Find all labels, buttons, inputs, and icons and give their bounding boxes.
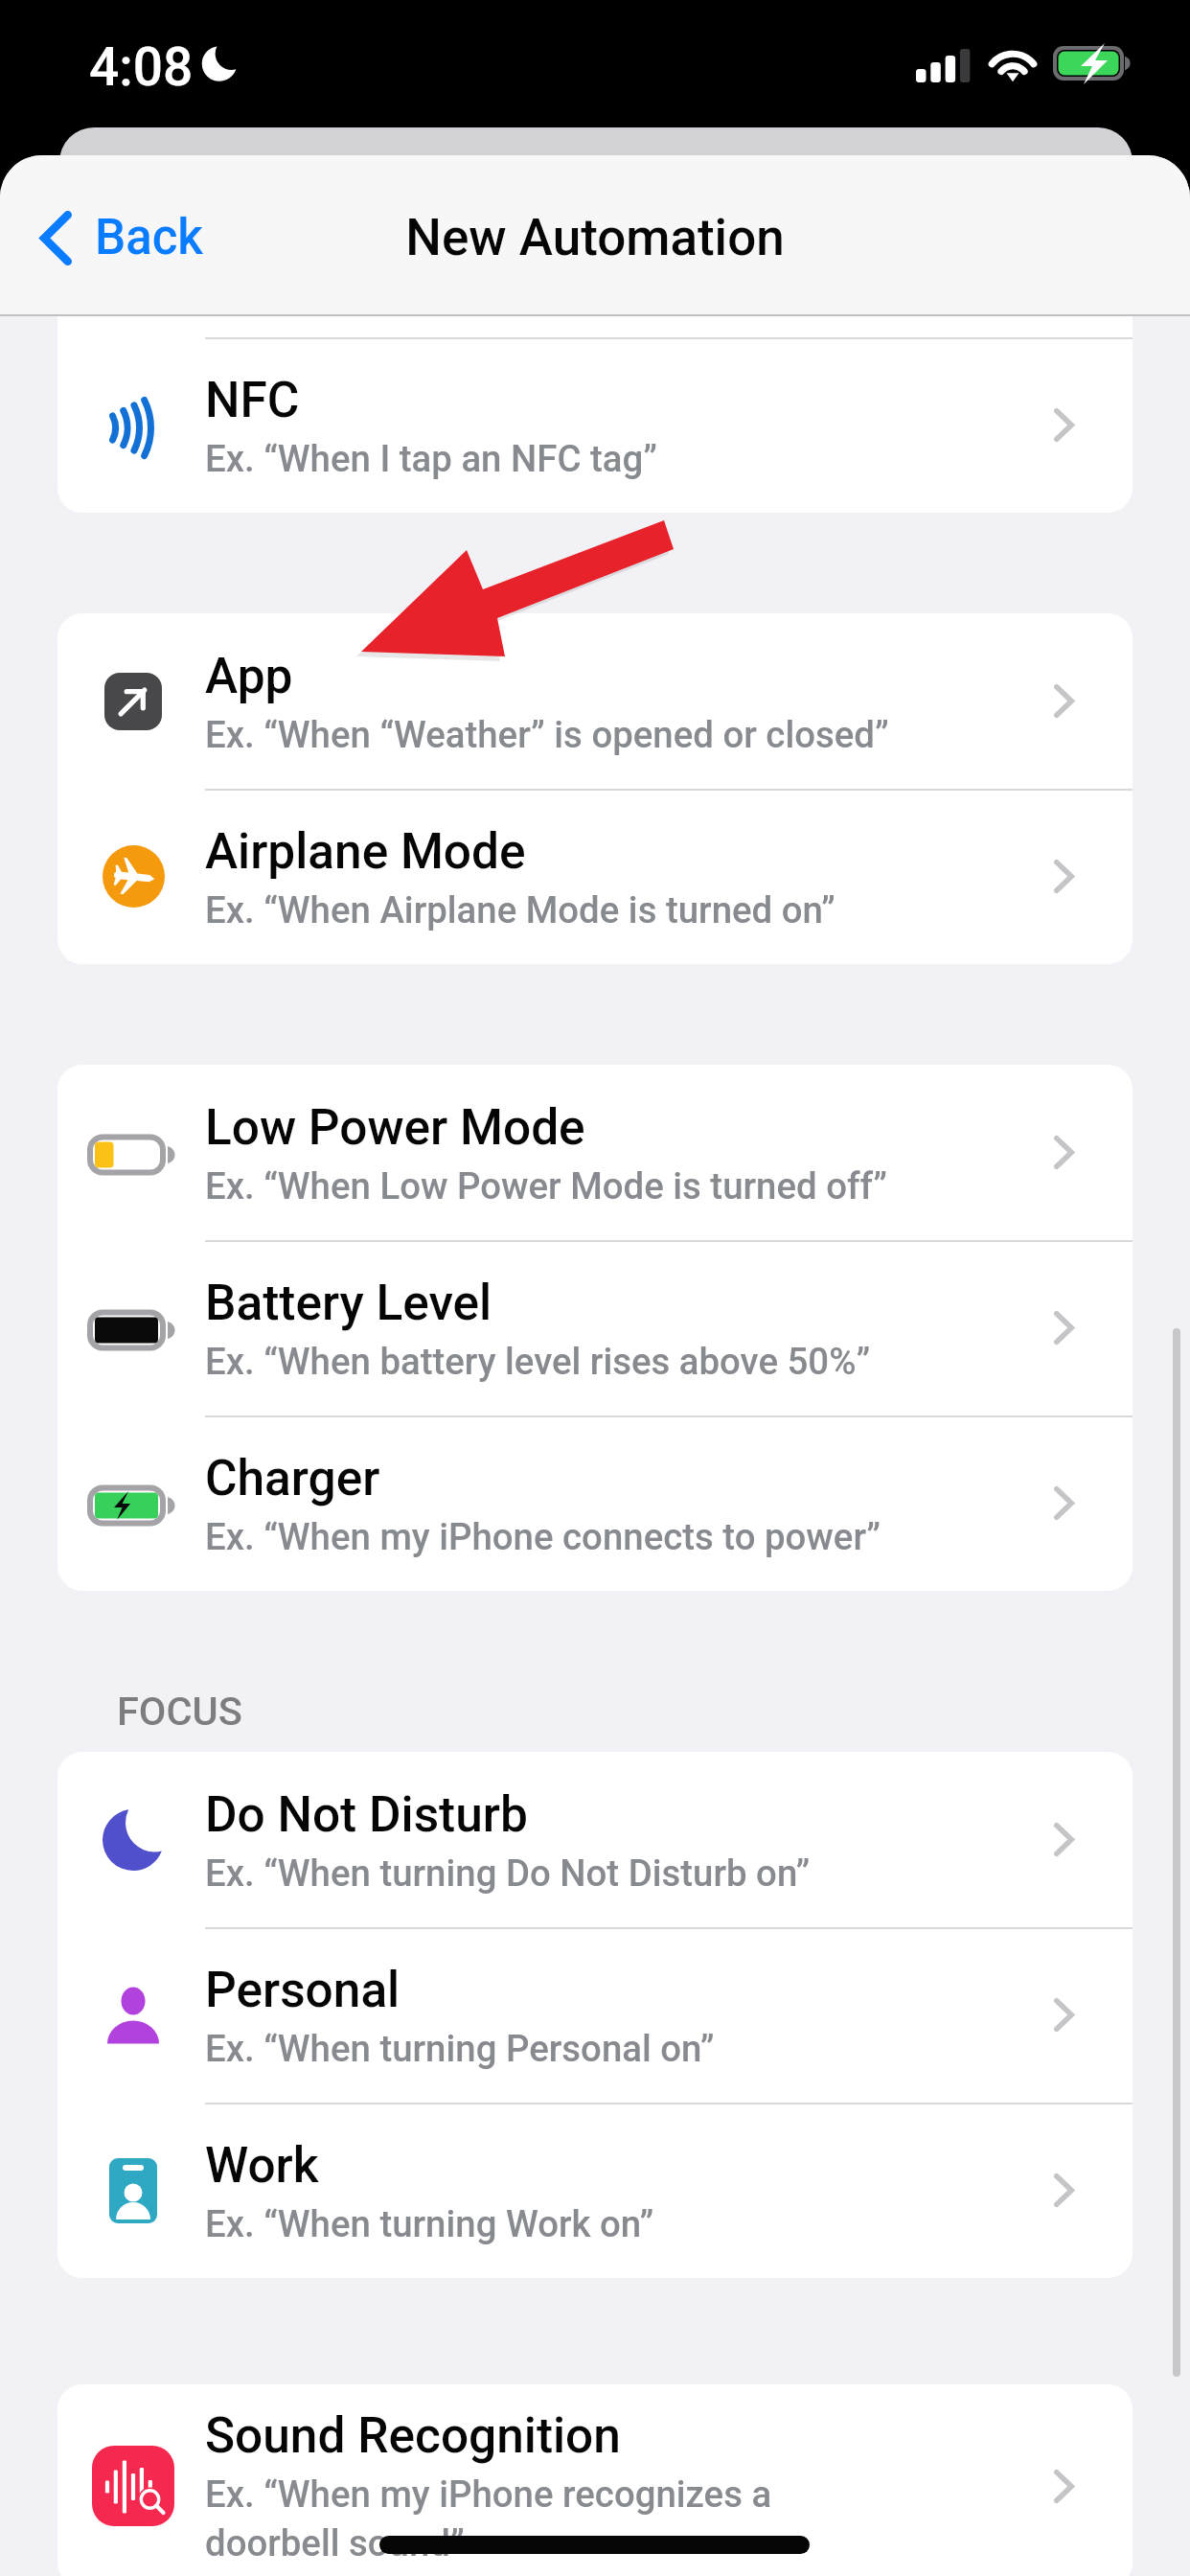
staticText: Back bbox=[95, 209, 203, 266]
staticText: Personal bbox=[205, 1961, 400, 2018]
staticText: Ex. “When my iPhone recognizes a doorbel… bbox=[205, 2472, 772, 2565]
button[interactable]: Sound Recognition bbox=[57, 2384, 1133, 2576]
staticText: Ex. “When turning Personal on” bbox=[205, 2027, 715, 2070]
staticText: Work bbox=[205, 2136, 319, 2194]
staticText: Ex. “When my iPhone connects to power” bbox=[205, 1515, 881, 1558]
button[interactable]: Battery Level bbox=[57, 1240, 1133, 1415]
button[interactable]: Work bbox=[57, 2103, 1133, 2278]
staticText: Ex. “When turning Do Not Disturb on” bbox=[205, 1851, 811, 1895]
staticText: Do Not Disturb bbox=[205, 1785, 528, 1843]
staticText: Ex. “When Low Power Mode is turned off” bbox=[205, 1164, 888, 1207]
button[interactable]: Back bbox=[27, 197, 217, 278]
staticText: Ex. “When Airplane Mode is turned on” bbox=[205, 888, 835, 931]
button[interactable]: App bbox=[57, 613, 1133, 789]
button[interactable]: Low Power Mode bbox=[57, 1065, 1133, 1240]
button[interactable]: Airplane Mode bbox=[57, 789, 1133, 964]
staticText: Ex. “When battery level rises above 50%” bbox=[205, 1340, 871, 1383]
staticText: Charger bbox=[205, 1449, 380, 1506]
button[interactable]: Charger bbox=[57, 1415, 1133, 1591]
staticText: Ex. “When turning Work on” bbox=[205, 2202, 654, 2245]
staticText: Low Power Mode bbox=[205, 1098, 585, 1156]
staticText: New Automation bbox=[405, 208, 785, 267]
staticText: Airplane Mode bbox=[205, 822, 526, 880]
staticText: Sound Recognition bbox=[205, 2406, 621, 2464]
staticText: Ex. “When “Weather” is opened or closed” bbox=[205, 713, 889, 756]
button[interactable]: Personal bbox=[57, 1927, 1133, 2103]
staticText: Battery Level bbox=[205, 1274, 492, 1331]
staticText: NFC bbox=[205, 371, 300, 428]
staticText: App bbox=[205, 647, 293, 704]
button[interactable]: Do Not Disturb bbox=[57, 1752, 1133, 1927]
staticText: Ex. “When I tap an NFC tag” bbox=[205, 437, 658, 480]
staticText: FOCUS bbox=[117, 1688, 242, 1735]
staticText: 4:08 bbox=[89, 36, 194, 98]
button[interactable]: NFC bbox=[57, 337, 1133, 513]
